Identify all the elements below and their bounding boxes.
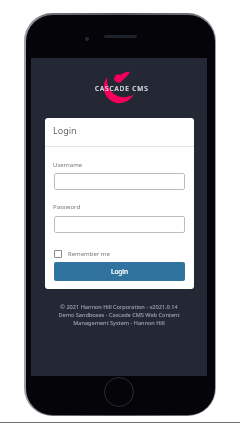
staticText: Demo Sandboxes - Cascade CMS Web Content (58, 311, 180, 319)
staticText: Remember me (68, 250, 110, 258)
staticText: Password (53, 203, 81, 211)
button[interactable]: Home (104, 377, 134, 407)
button[interactable]: Remember me (54, 250, 110, 258)
button[interactable]: Login (54, 262, 185, 281)
staticText: Login (111, 267, 129, 276)
staticText: © 2021 Hannon Hill Corporation - v2021.0… (60, 303, 178, 311)
button[interactable] (54, 216, 185, 233)
button[interactable] (54, 173, 185, 190)
staticText: Login (53, 124, 77, 136)
staticText: Management System - Hannon Hill (73, 319, 165, 327)
staticText: CASCADE CMS (95, 84, 149, 93)
staticText: Username (53, 161, 83, 169)
